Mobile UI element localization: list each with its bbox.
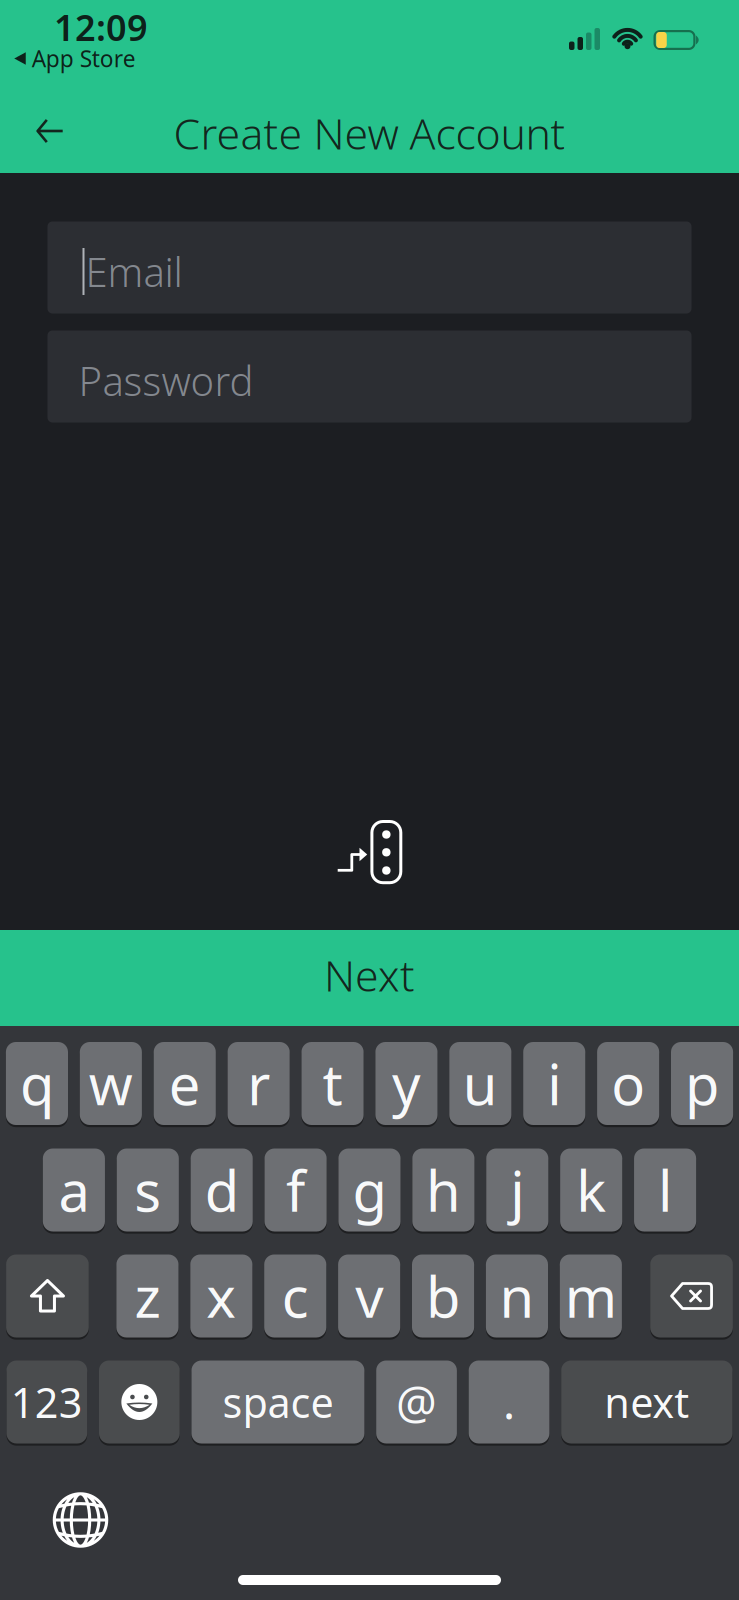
button[interactable]: c (264, 1254, 326, 1337)
button[interactable]: i (523, 1042, 585, 1125)
button[interactable]: Switch keyboard (51, 1491, 109, 1549)
button[interactable]: Next (0, 930, 739, 1026)
staticText: Password (78, 354, 253, 407)
button[interactable]: y (375, 1042, 437, 1125)
button[interactable]: f (264, 1148, 327, 1231)
staticText: h (426, 1153, 461, 1227)
staticText: n (499, 1259, 534, 1333)
staticText: m (565, 1259, 617, 1333)
staticText: y (392, 1046, 421, 1121)
staticText: q (20, 1046, 54, 1121)
staticText: b (426, 1259, 460, 1333)
staticText: v (355, 1259, 383, 1333)
staticText: k (576, 1153, 606, 1227)
staticText: . (503, 1372, 515, 1432)
staticText: p (685, 1046, 719, 1121)
staticText: l (658, 1153, 672, 1227)
staticText: i (547, 1046, 561, 1121)
button[interactable]: a (43, 1148, 105, 1231)
button[interactable]: 123 (6, 1360, 87, 1443)
staticText: 123 (11, 1375, 83, 1429)
staticText: w (89, 1046, 133, 1121)
button[interactable]: h (412, 1148, 474, 1231)
button[interactable]: m (560, 1254, 622, 1337)
button[interactable]: . (469, 1360, 549, 1443)
button[interactable]: x (190, 1254, 252, 1337)
staticText: d (205, 1153, 239, 1227)
staticText: Create New Account (173, 105, 565, 161)
button[interactable]: z (116, 1254, 178, 1337)
button[interactable]: s (117, 1148, 179, 1231)
staticText: z (134, 1259, 160, 1333)
button[interactable]: App Store (14, 43, 136, 73)
button[interactable]: Delete (650, 1254, 733, 1337)
button[interactable]: e (154, 1042, 216, 1125)
staticText: a (58, 1153, 89, 1227)
button[interactable]: n (486, 1254, 548, 1337)
staticText: o (611, 1046, 645, 1121)
button[interactable]: d (191, 1148, 253, 1231)
button[interactable]: space (191, 1360, 364, 1443)
button[interactable]: next (561, 1360, 732, 1443)
button[interactable]: o (597, 1042, 659, 1125)
staticText: t (323, 1046, 343, 1121)
staticText: Next (324, 947, 415, 1003)
button[interactable]: q (6, 1042, 68, 1125)
staticText: next (604, 1375, 689, 1429)
button[interactable]: g (338, 1148, 400, 1231)
button[interactable]: Back (26, 109, 74, 153)
button[interactable]: r (228, 1042, 290, 1125)
button[interactable]: b (412, 1254, 474, 1337)
button[interactable]: @ (376, 1360, 457, 1443)
staticText: Email (85, 245, 182, 298)
staticText: j (510, 1153, 524, 1227)
staticText: g (352, 1153, 386, 1227)
staticText: @ (396, 1372, 437, 1432)
button[interactable]: Password (47, 330, 691, 422)
staticText: space (222, 1375, 333, 1429)
button[interactable]: w (80, 1042, 142, 1125)
staticText: x (206, 1259, 236, 1333)
button[interactable]: v (338, 1254, 400, 1337)
button[interactable]: Shift (6, 1254, 89, 1337)
button[interactable]: u (449, 1042, 511, 1125)
staticText: e (169, 1046, 201, 1121)
button[interactable]: Emoji (99, 1360, 180, 1443)
staticText: 12:09 (54, 3, 148, 51)
button[interactable]: k (560, 1148, 622, 1231)
staticText: s (134, 1153, 161, 1227)
button[interactable]: j (486, 1148, 548, 1231)
button[interactable]: p (671, 1042, 733, 1125)
staticText: r (247, 1046, 270, 1121)
staticText: c (282, 1259, 309, 1333)
staticText: App Store (32, 43, 136, 73)
button[interactable]: l (634, 1148, 696, 1231)
button[interactable]: t (301, 1042, 364, 1125)
staticText: f (286, 1153, 305, 1227)
button[interactable]: Email (47, 221, 691, 313)
staticText: u (463, 1046, 498, 1121)
